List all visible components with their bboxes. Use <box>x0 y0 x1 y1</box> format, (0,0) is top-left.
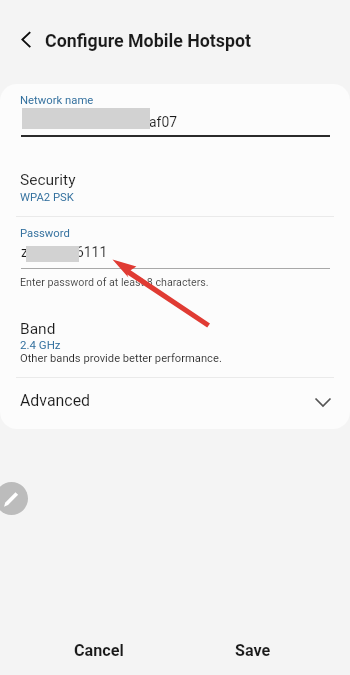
button[interactable]: Cancel <box>40 630 158 670</box>
staticText: Network name <box>20 94 94 107</box>
staticText: Security <box>20 171 76 189</box>
button[interactable]: Save <box>200 630 305 670</box>
button[interactable]: Back <box>8 22 44 58</box>
staticText: Configure Mobile Hotspot <box>45 30 252 51</box>
staticText: Enter password of at least 8 characters. <box>20 276 209 289</box>
staticText: Advanced <box>20 391 91 410</box>
staticText: 6111 <box>76 244 108 260</box>
staticText: WPA2 PSK <box>20 191 74 204</box>
staticText: Cancel <box>74 641 124 660</box>
staticText: z <box>21 244 28 260</box>
staticText: Password <box>20 227 70 240</box>
staticText: Band <box>20 320 56 338</box>
button[interactable]: Edit <box>0 482 28 515</box>
staticText: 2.4 GHz <box>20 338 61 351</box>
staticText: Save <box>235 641 271 660</box>
staticText: af07 <box>149 114 177 130</box>
staticText: Other bands provide better performance. <box>20 352 222 365</box>
button[interactable] <box>0 383 350 675</box>
